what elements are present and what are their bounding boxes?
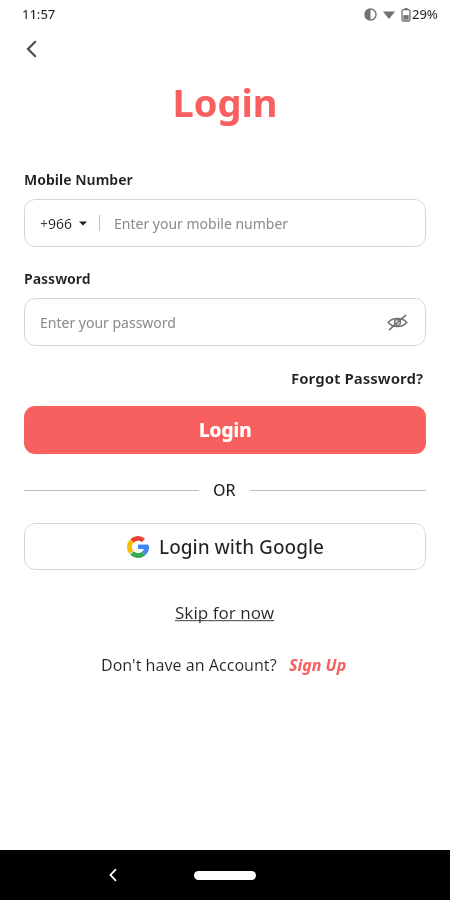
staticText: +966	[40, 214, 73, 233]
button[interactable]: Home	[192, 867, 258, 883]
staticText: Login with Google	[159, 534, 324, 560]
button[interactable]: Login with Google	[24, 523, 426, 570]
staticText: OR	[213, 479, 236, 501]
button[interactable]: Sign Up	[287, 652, 349, 678]
button[interactable]: Enter your password	[24, 298, 426, 346]
staticText: Password	[24, 269, 91, 288]
button[interactable]: Back	[14, 31, 50, 67]
staticText: Sign Up	[289, 654, 347, 676]
button[interactable]: Back	[96, 858, 130, 892]
staticText: Mobile Number	[24, 170, 133, 189]
button[interactable]: Show password	[384, 309, 410, 335]
staticText: Enter your password	[40, 313, 176, 332]
staticText: Forgot Password?	[291, 368, 424, 388]
button[interactable]: Skip for now	[171, 597, 279, 628]
staticText: 11:57	[22, 5, 56, 23]
button[interactable]: Login	[24, 406, 426, 454]
button[interactable]: +966	[24, 199, 426, 247]
staticText: 29%	[412, 5, 438, 23]
staticText: Login	[199, 417, 252, 443]
button[interactable]: Forgot Password?	[289, 366, 426, 390]
staticText: Skip for now	[175, 601, 275, 624]
staticText: Don't have an Account?	[101, 654, 277, 676]
staticText: Enter your mobile number	[114, 214, 289, 233]
staticText: Login	[0, 76, 450, 128]
